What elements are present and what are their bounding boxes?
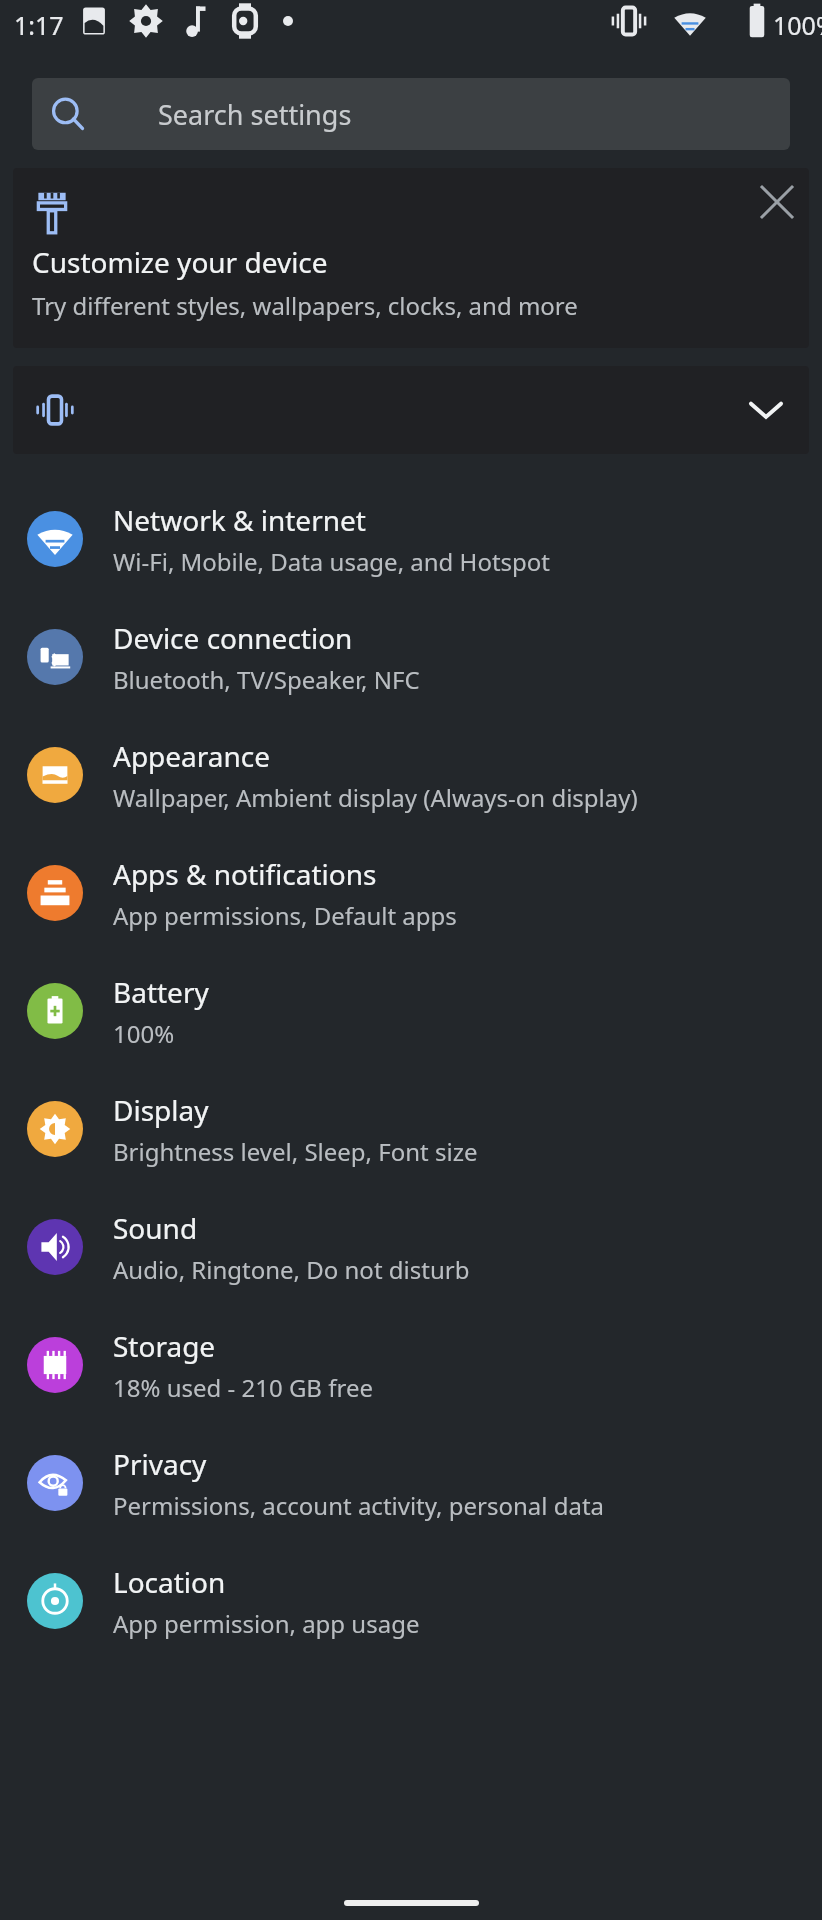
button[interactable]: Appearance xyxy=(0,716,822,834)
button[interactable]: Network & internet xyxy=(0,480,822,598)
button[interactable]: Device connection xyxy=(0,598,822,716)
staticText: Network & internet xyxy=(113,501,366,539)
button[interactable]: Storage xyxy=(0,1306,822,1424)
button[interactable]: Location xyxy=(0,1542,822,1660)
button[interactable]: Display xyxy=(0,1070,822,1188)
button[interactable]: Apps & notifications xyxy=(0,834,822,952)
button[interactable] xyxy=(13,366,809,454)
button[interactable]: Battery xyxy=(0,952,822,1070)
staticText: Location xyxy=(113,1563,226,1601)
staticText: Privacy xyxy=(113,1445,207,1483)
staticText: Appearance xyxy=(113,737,271,775)
staticText: Try different styles, wallpapers, clocks… xyxy=(32,289,578,322)
staticText: Wi-Fi, Mobile, Data usage, and Hotspot xyxy=(113,545,551,578)
staticText: 18% used - 210 GB free xyxy=(113,1371,373,1404)
staticText: 1:17 xyxy=(14,8,64,42)
staticText: Display xyxy=(113,1091,209,1129)
button[interactable]: Dismiss xyxy=(13,168,809,348)
staticText: App permission, app usage xyxy=(113,1607,420,1640)
staticText: Customize your device xyxy=(32,243,328,281)
button[interactable]: Search settings xyxy=(32,78,790,150)
staticText: Permissions, account activity, personal … xyxy=(113,1489,605,1522)
staticText: App permissions, Default apps xyxy=(113,899,457,932)
staticText: Apps & notifications xyxy=(113,855,377,893)
staticText: 100% xyxy=(113,1017,175,1050)
staticText: Search settings xyxy=(158,96,352,133)
staticText: Storage xyxy=(113,1327,216,1365)
button[interactable]: Privacy xyxy=(0,1424,822,1542)
staticText: Wallpaper, Ambient display (Always-on di… xyxy=(113,781,638,814)
staticText: Audio, Ringtone, Do not disturb xyxy=(113,1253,470,1286)
staticText: Brightness level, Sleep, Font size xyxy=(113,1135,478,1168)
staticText: Battery xyxy=(113,973,209,1011)
button[interactable]: Dismiss xyxy=(745,168,809,232)
button[interactable]: Sound xyxy=(0,1188,822,1306)
staticText: 100% xyxy=(773,8,822,42)
staticText: Device connection xyxy=(113,619,353,657)
staticText: Sound xyxy=(113,1209,198,1247)
staticText: Bluetooth, TV/Speaker, NFC xyxy=(113,663,420,696)
